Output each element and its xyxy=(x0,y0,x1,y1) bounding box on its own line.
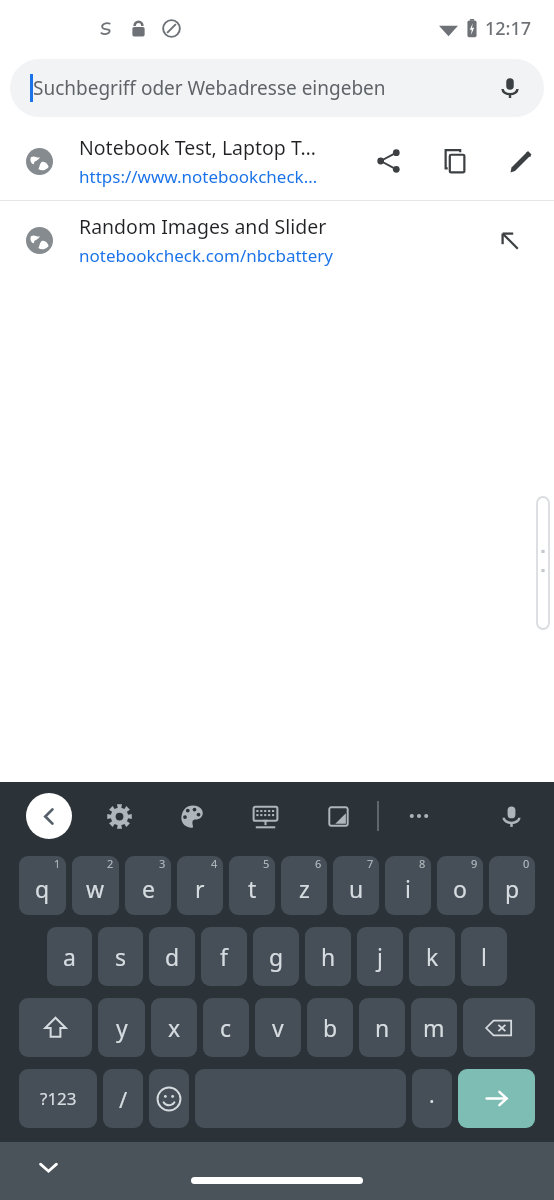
button[interactable]: h xyxy=(305,927,351,986)
staticText: m xyxy=(423,1012,445,1043)
staticText: l xyxy=(481,941,487,972)
staticText: 3 xyxy=(159,856,166,871)
staticText: Suchbegriff oder Webadresse eingeben xyxy=(33,75,386,101)
staticText: t xyxy=(248,873,257,904)
staticText: 4 xyxy=(211,856,218,871)
staticText: j xyxy=(377,941,383,972)
staticText: 9 xyxy=(471,856,478,871)
button[interactable]: g xyxy=(253,927,299,986)
staticText: c xyxy=(220,1012,232,1043)
button[interactable]: More options xyxy=(396,793,442,839)
staticText: 1 xyxy=(54,856,61,871)
staticText: Notebook Test, Laptop T… xyxy=(79,134,317,161)
button[interactable]: Backspace xyxy=(463,998,535,1057)
staticText: 8 xyxy=(419,856,426,871)
button[interactable]: Emoji xyxy=(149,1069,189,1128)
button[interactable]: Back xyxy=(26,793,72,839)
staticText: v xyxy=(272,1012,284,1043)
button[interactable]: Insert suggestion xyxy=(476,207,542,273)
button[interactable]: Go xyxy=(458,1069,535,1128)
staticText: notebookcheck.com/nbcbattery xyxy=(79,244,333,267)
button[interactable]: x xyxy=(151,998,197,1057)
staticText: ?123 xyxy=(40,1087,77,1110)
staticText: https://www.notebookcheck… xyxy=(79,165,318,188)
button[interactable]: ?123 xyxy=(19,1069,97,1128)
button[interactable]: l xyxy=(461,927,507,986)
button[interactable]: y xyxy=(98,998,145,1057)
button[interactable]: n xyxy=(359,998,405,1057)
button[interactable]: p xyxy=(489,856,535,915)
button[interactable]: Notebook Test, Laptop T… xyxy=(0,122,554,200)
button[interactable]: e xyxy=(125,856,171,915)
button[interactable]: d xyxy=(149,927,195,986)
staticText: 12:17 xyxy=(485,16,532,41)
button[interactable]: u xyxy=(333,856,379,915)
staticText: b xyxy=(323,1012,338,1043)
staticText: n xyxy=(375,1012,390,1043)
staticText: o xyxy=(453,873,467,904)
button[interactable]: s xyxy=(98,927,143,986)
staticText: f xyxy=(220,941,228,972)
button[interactable]: j xyxy=(357,927,403,986)
button[interactable]: Themes xyxy=(169,793,215,839)
button[interactable]: m xyxy=(411,998,457,1057)
staticText: g xyxy=(269,941,284,972)
button[interactable]: Edit xyxy=(488,128,554,194)
staticText: Random Images and Slider xyxy=(79,213,327,240)
staticText: . xyxy=(429,1081,435,1110)
button[interactable]: . xyxy=(412,1069,452,1128)
staticText: k xyxy=(426,941,439,972)
staticText: x xyxy=(168,1012,181,1043)
staticText: 2 xyxy=(107,856,114,871)
staticText: 6 xyxy=(315,856,322,871)
button[interactable]: Settings xyxy=(96,793,142,839)
button[interactable]: k xyxy=(409,927,455,986)
button[interactable]: Hide keyboard xyxy=(28,1147,68,1187)
staticText: 7 xyxy=(367,856,374,871)
staticText: w xyxy=(86,873,105,904)
button[interactable]: Copy xyxy=(422,128,488,194)
button[interactable]: r xyxy=(177,856,223,915)
button[interactable]: w xyxy=(72,856,119,915)
staticText: 5 xyxy=(263,856,270,871)
button[interactable]: t xyxy=(229,856,275,915)
button[interactable]: a xyxy=(47,927,92,986)
button[interactable]: Share xyxy=(356,128,422,194)
button[interactable]: i xyxy=(385,856,431,915)
staticText: d xyxy=(165,941,180,972)
button[interactable]: Suchbegriff oder Webadresse eingeben xyxy=(10,59,544,117)
button[interactable]: Voice search xyxy=(488,66,532,110)
staticText: p xyxy=(505,873,520,904)
staticText: z xyxy=(299,873,310,904)
button[interactable]: Keyboard layout xyxy=(242,793,288,839)
button[interactable]: b xyxy=(307,998,353,1057)
staticText: r xyxy=(195,873,205,904)
button[interactable]: Random Images and Slider xyxy=(0,201,554,279)
staticText: q xyxy=(35,873,50,904)
button[interactable]: Resize keyboard xyxy=(315,793,361,839)
staticText: h xyxy=(321,941,336,972)
button[interactable]: q xyxy=(19,856,66,915)
staticText: u xyxy=(349,873,364,904)
button[interactable]: f xyxy=(201,927,247,986)
button[interactable]: Voice input xyxy=(488,793,534,839)
staticText: e xyxy=(142,873,155,904)
button[interactable]: z xyxy=(281,856,327,915)
button[interactable]: / xyxy=(103,1069,143,1128)
staticText: s xyxy=(115,941,127,972)
button[interactable]: o xyxy=(437,856,483,915)
button[interactable]: v xyxy=(255,998,301,1057)
staticText: 0 xyxy=(523,856,530,871)
staticText: / xyxy=(119,1084,128,1114)
button[interactable]: c xyxy=(203,998,249,1057)
button[interactable]: Shift xyxy=(19,998,92,1057)
staticText: a xyxy=(63,941,76,972)
staticText: y xyxy=(116,1012,128,1043)
staticText: i xyxy=(405,873,411,904)
